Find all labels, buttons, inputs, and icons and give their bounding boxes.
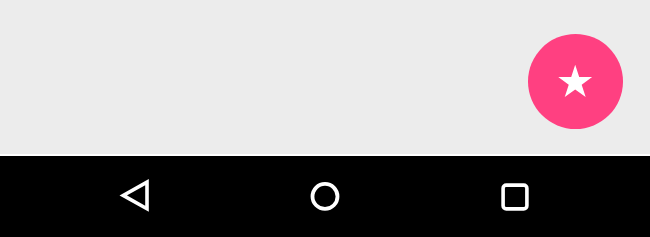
button[interactable]: Home — [295, 156, 355, 237]
button[interactable]: Back — [106, 156, 166, 237]
button[interactable]: Recent apps — [485, 156, 545, 237]
button[interactable]: Favorite — [528, 34, 623, 129]
